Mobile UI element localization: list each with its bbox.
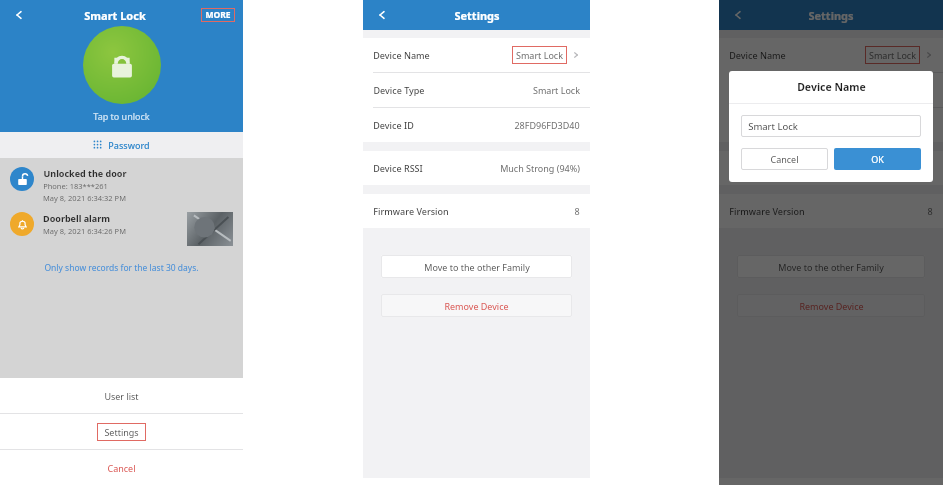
staticText: MORE xyxy=(205,9,231,21)
staticText: Device Name xyxy=(373,49,430,61)
staticText: Phone: 183***261 xyxy=(43,181,108,191)
button[interactable]: Remove Device xyxy=(381,294,572,317)
staticText: Device RSSI xyxy=(373,162,423,174)
staticText: Smart Lock xyxy=(748,120,798,133)
staticText: Settings xyxy=(808,8,854,23)
staticText: Device RSSI xyxy=(729,162,779,174)
staticText: Smart Lock xyxy=(84,8,146,23)
staticText: Cancel xyxy=(770,153,799,165)
button[interactable]: MORE xyxy=(205,9,231,21)
button[interactable]: Unlocked the door xyxy=(10,167,233,203)
staticText: Unlocked the door xyxy=(43,167,127,179)
staticText: Settings xyxy=(104,426,139,438)
staticText: Remove Device xyxy=(444,300,509,312)
staticText: Only show records for the last 30 days. xyxy=(44,262,199,274)
button[interactable]: Tap to unlock xyxy=(83,26,161,104)
staticText: Password xyxy=(108,139,150,151)
staticText: Device Type xyxy=(373,84,425,96)
button[interactable]: Device Name xyxy=(373,38,580,72)
button[interactable]: OK xyxy=(834,148,921,170)
staticText: Move to the other Family xyxy=(424,261,530,273)
button[interactable]: Device RSSI xyxy=(729,151,933,185)
button[interactable]: Firmware Version xyxy=(729,194,933,228)
staticText: Much Strong (94%) xyxy=(500,162,580,174)
button[interactable]: Device Type xyxy=(729,73,933,107)
staticText: 28FD96FD3D40 xyxy=(514,119,580,131)
button[interactable]: Smart Lock xyxy=(748,115,914,137)
button[interactable]: Back xyxy=(8,4,30,26)
button[interactable]: Device Name xyxy=(729,38,933,72)
staticText: Doorbell alarm xyxy=(43,212,110,224)
button[interactable]: Back xyxy=(727,4,749,26)
button[interactable]: Firmware Version xyxy=(373,194,580,228)
button[interactable]: User list xyxy=(0,378,243,413)
button[interactable]: Move to the other Family xyxy=(381,255,572,278)
staticText: 8 xyxy=(927,205,933,217)
staticText: May 8, 2021 6:34:26 PM xyxy=(43,226,126,236)
staticText: Device Name xyxy=(797,80,866,94)
button[interactable]: Device RSSI xyxy=(373,151,580,185)
staticText: Smart Lock xyxy=(533,84,580,96)
button[interactable]: Move to the other Family xyxy=(737,255,925,278)
staticText: Move to the other Family xyxy=(778,261,884,273)
staticText: May 8, 2021 6:34:32 PM xyxy=(43,193,126,203)
staticText: Device Name xyxy=(729,49,786,61)
staticText: Settings xyxy=(454,8,500,23)
staticText: Device ID xyxy=(729,119,770,131)
staticText: Much Strong (94%) xyxy=(853,162,933,174)
button[interactable]: Doorbell alarm xyxy=(10,212,233,246)
staticText: Firmware Version xyxy=(729,205,805,217)
staticText: Cancel xyxy=(107,462,136,474)
button[interactable]: Cancel xyxy=(741,148,828,170)
staticText: Device ID xyxy=(373,119,414,131)
staticText: User list xyxy=(104,390,139,402)
button[interactable]: Device ID xyxy=(729,108,933,142)
staticText: Smart Lock xyxy=(869,49,916,61)
staticText: 28FD96FD3D40 xyxy=(867,119,933,131)
button[interactable]: Device Type xyxy=(373,73,580,107)
staticText: OK xyxy=(871,153,884,165)
staticText: Smart Lock xyxy=(516,49,563,61)
staticText: Firmware Version xyxy=(373,205,449,217)
button[interactable]: Password xyxy=(0,132,243,158)
button[interactable]: Back xyxy=(371,4,393,26)
button[interactable]: Cancel xyxy=(0,450,243,485)
staticText: Remove Device xyxy=(799,300,864,312)
button[interactable]: Device ID xyxy=(373,108,580,142)
staticText: 8 xyxy=(574,205,580,217)
button[interactable]: Remove Device xyxy=(737,294,925,317)
button[interactable]: Settings xyxy=(0,414,243,449)
staticText: Tap to unlock xyxy=(93,110,150,122)
